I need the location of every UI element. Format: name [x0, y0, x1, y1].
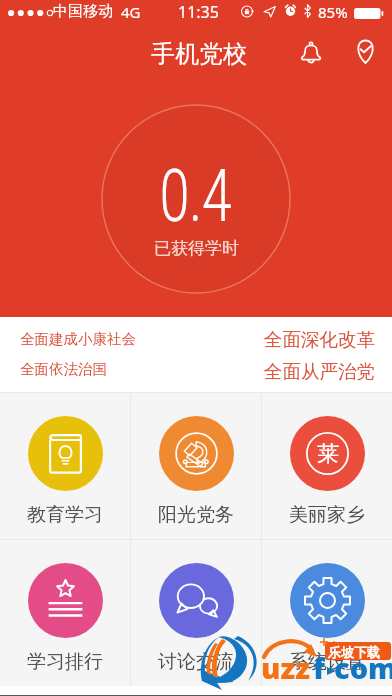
staticText: 美丽家乡 — [289, 503, 365, 527]
staticText: 学习排行 — [27, 650, 103, 674]
staticText: 85% — [318, 2, 348, 22]
button[interactable]: 讨论交流 — [131, 540, 261, 686]
staticText: 全面依法治国 — [20, 360, 107, 378]
staticText: 莱 — [317, 440, 339, 468]
staticText: 乐坡下载 — [328, 644, 380, 660]
button[interactable]: 学习排行 — [0, 540, 130, 686]
staticText: 系统设置 — [289, 650, 365, 674]
staticText: 全面深化改革 — [264, 328, 375, 351]
staticText: 4G — [121, 2, 141, 22]
button[interactable]: 系统设置 — [262, 540, 392, 686]
staticText: uzz — [261, 648, 310, 687]
staticText: 讨论交流 — [158, 650, 234, 674]
staticText: 全面从严治党 — [264, 360, 375, 383]
staticText: f — [313, 648, 325, 687]
staticText: 全面建成小康社会 — [20, 330, 136, 348]
button[interactable]: 教育学习 — [0, 393, 130, 539]
staticText: 中国移动 — [53, 2, 113, 21]
button[interactable]: 莱 — [262, 393, 392, 539]
button[interactable]: 阳光党务 — [131, 393, 261, 539]
staticText: com — [334, 648, 392, 687]
button[interactable]: Notifications — [291, 32, 331, 72]
staticText: 教育学习 — [27, 503, 103, 527]
staticText: 0.4 — [160, 154, 232, 238]
button[interactable]: Check in location — [345, 31, 385, 71]
staticText: 阳光党务 — [158, 503, 234, 527]
staticText: 11:35 — [178, 1, 219, 23]
staticText: 手机党校 — [151, 39, 247, 69]
staticText: 已获得学时 — [154, 238, 239, 259]
